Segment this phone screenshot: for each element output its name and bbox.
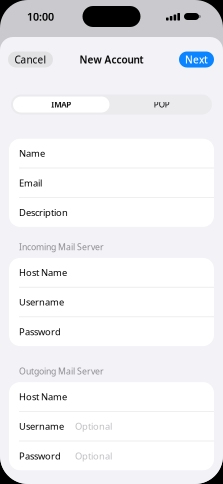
button[interactable]: IMAP	[11, 94, 111, 114]
staticText: Next	[185, 53, 208, 66]
staticText: Description	[19, 206, 68, 219]
staticText: Incoming Mail Server	[19, 241, 104, 253]
button[interactable]: Next	[179, 51, 214, 67]
staticText: POP	[154, 99, 170, 110]
button[interactable]: Password	[9, 317, 214, 346]
staticText: Optional	[75, 420, 112, 432]
staticText: Username	[19, 296, 64, 308]
button[interactable]: Password	[9, 441, 214, 470]
staticText: Name	[19, 147, 45, 159]
button[interactable]: Cancel	[8, 51, 53, 67]
staticText: Password	[19, 325, 61, 338]
button[interactable]: Host Name	[9, 258, 214, 287]
button[interactable]: Host Name	[9, 382, 214, 411]
staticText: Email	[19, 176, 42, 189]
staticText: Cancel	[14, 53, 46, 66]
staticText: Host Name	[19, 266, 67, 279]
button[interactable]: Username	[9, 412, 214, 441]
staticText: IMAP	[51, 99, 71, 110]
button[interactable]: Name	[9, 139, 214, 168]
button[interactable]: POP	[111, 94, 212, 114]
staticText: Optional	[75, 449, 112, 462]
button[interactable]: Username	[9, 287, 214, 316]
button[interactable]: Description	[9, 198, 214, 227]
staticText: Password	[19, 449, 61, 462]
staticText: 10:00	[27, 9, 54, 24]
staticText: Host Name	[19, 390, 67, 403]
button[interactable]: Email	[9, 168, 214, 197]
staticText: Username	[19, 420, 64, 432]
staticText: New Account	[79, 53, 143, 66]
staticText: Outgoing Mail Server	[19, 365, 104, 377]
